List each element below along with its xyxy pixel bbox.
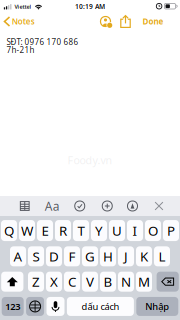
button[interactable]: Markup: [121, 196, 144, 216]
staticText: N: [121, 273, 131, 290]
staticText: V: [86, 273, 94, 290]
button[interactable]: Add People: [97, 13, 114, 30]
button[interactable]: Format: [38, 196, 66, 216]
button[interactable]: Y: [91, 220, 107, 241]
button[interactable]: J: [118, 246, 134, 266]
staticText: J: [124, 247, 128, 265]
button[interactable]: Close: [146, 196, 172, 216]
staticText: Z: [32, 273, 40, 290]
staticText: W: [21, 222, 33, 239]
button[interactable]: O: [145, 220, 161, 241]
staticText: dấu cách: [81, 300, 119, 313]
staticText: SĐT: 0976 170 686: [6, 37, 78, 47]
staticText: S: [32, 247, 39, 265]
staticText: K: [140, 247, 148, 265]
button[interactable]: U: [109, 220, 125, 241]
button[interactable]: V: [82, 272, 98, 292]
button[interactable]: dấu cách: [67, 297, 134, 316]
button[interactable]: Nhập: [136, 297, 178, 316]
staticText: H: [103, 247, 113, 265]
button[interactable]: Next Keyboard: [26, 297, 44, 316]
staticText: P: [167, 222, 175, 239]
button[interactable]: Share: [114, 13, 137, 30]
staticText: X: [50, 273, 58, 290]
staticText: Y: [95, 222, 103, 239]
staticText: F: [68, 247, 75, 265]
staticText: Q: [4, 222, 14, 239]
staticText: 7h-21h: [6, 45, 34, 55]
button[interactable]: Done: [137, 13, 169, 30]
staticText: A: [13, 247, 22, 265]
staticText: T: [77, 222, 84, 239]
staticText: D: [49, 247, 59, 265]
staticText: Notes: [12, 16, 35, 27]
button[interactable]: R: [55, 220, 71, 241]
staticText: I: [132, 222, 137, 239]
button[interactable]: Q: [1, 220, 17, 241]
button[interactable]: F: [64, 246, 80, 266]
staticText: Nhập: [145, 300, 169, 313]
button[interactable]: H: [100, 246, 116, 266]
staticText: Foody.vn: [67, 153, 112, 167]
staticText: U: [112, 222, 122, 239]
button[interactable]: Add: [93, 196, 121, 216]
button[interactable]: Table: [11, 196, 38, 216]
button[interactable]: G: [82, 246, 98, 266]
staticText: G: [85, 247, 95, 265]
button[interactable]: Notes: [0, 13, 40, 30]
button[interactable]: 123: [2, 297, 24, 316]
staticText: 123: [5, 300, 20, 313]
button[interactable]: C: [64, 272, 80, 292]
staticText: R: [59, 222, 67, 239]
button[interactable]: S: [28, 246, 44, 266]
button[interactable]: D: [46, 246, 62, 266]
button[interactable]: M: [136, 272, 152, 292]
staticText: Aa: [45, 198, 60, 214]
staticText: C: [68, 273, 76, 290]
staticText: 10:19 AM: [75, 2, 105, 11]
staticText: E: [41, 222, 48, 239]
button[interactable]: P: [163, 220, 179, 241]
staticText: Viettel: [14, 3, 31, 10]
button[interactable]: Delete: [157, 272, 179, 292]
button[interactable]: Z: [28, 272, 44, 292]
staticText: L: [158, 247, 165, 265]
button[interactable]: A: [10, 246, 26, 266]
button[interactable]: E: [37, 220, 53, 241]
staticText: O: [148, 222, 158, 239]
button[interactable]: T: [73, 220, 89, 241]
button[interactable]: W: [19, 220, 35, 241]
button[interactable]: L: [154, 246, 170, 266]
staticText: Done: [142, 16, 163, 27]
button[interactable]: Shift: [1, 272, 23, 292]
button[interactable]: X: [46, 272, 62, 292]
staticText: M: [138, 273, 150, 290]
button[interactable]: K: [136, 246, 152, 266]
button[interactable]: B: [100, 272, 116, 292]
staticText: B: [103, 273, 112, 290]
button[interactable]: I: [127, 220, 143, 241]
button[interactable]: N: [118, 272, 134, 292]
button[interactable]: Checklist: [66, 196, 93, 216]
button[interactable]: Dictate: [46, 297, 64, 316]
